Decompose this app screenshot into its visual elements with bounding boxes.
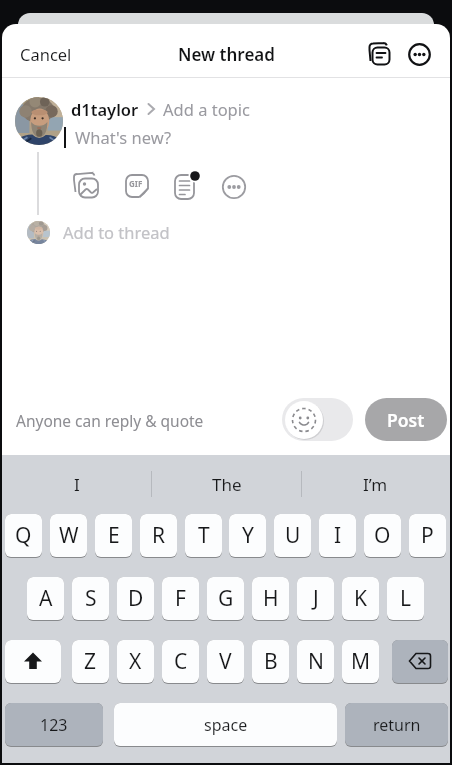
button[interactable]: [360, 36, 398, 72]
button[interactable]: Q: [5, 514, 42, 557]
staticText: Add a topic: [163, 98, 250, 120]
button[interactable]: M: [342, 640, 379, 683]
button[interactable]: L: [387, 577, 424, 620]
staticText: R: [152, 521, 166, 550]
button[interactable]: O: [364, 514, 401, 557]
staticText: W: [59, 521, 79, 550]
button[interactable]: GIF: [121, 170, 153, 202]
button[interactable]: C: [162, 640, 199, 683]
button[interactable]: G: [207, 577, 244, 620]
staticText: L: [400, 584, 412, 613]
staticText: Add to thread: [63, 221, 170, 243]
staticText: U: [285, 521, 301, 550]
button[interactable]: [71, 170, 103, 202]
button[interactable]: R: [140, 514, 177, 557]
button[interactable]: space: [114, 703, 337, 746]
staticText: D: [128, 584, 144, 613]
button[interactable]: 123: [5, 703, 103, 746]
staticText: G: [218, 584, 234, 613]
button[interactable]: Add a topic: [163, 98, 250, 120]
button[interactable]: W: [50, 514, 87, 557]
staticText: The: [212, 473, 242, 496]
button[interactable]: [400, 36, 438, 72]
button[interactable]: H: [252, 577, 289, 620]
button[interactable]: Z: [72, 640, 109, 683]
button[interactable]: D: [117, 577, 154, 620]
staticText: d1taylor: [71, 98, 139, 120]
button[interactable]: F: [162, 577, 199, 620]
staticText: return: [373, 714, 421, 736]
staticText: T: [198, 521, 210, 550]
button[interactable]: A: [27, 577, 64, 620]
staticText: New thread: [178, 43, 275, 66]
button[interactable]: return: [345, 703, 448, 746]
button[interactable]: E: [95, 514, 132, 557]
staticText: Cancel: [20, 43, 72, 65]
staticText: I: [334, 521, 342, 550]
staticText: O: [374, 521, 391, 550]
button[interactable]: [282, 398, 353, 441]
staticText: Post: [387, 408, 425, 432]
button[interactable]: T: [185, 514, 222, 557]
staticText: Y: [242, 521, 254, 550]
staticText: X: [129, 647, 142, 676]
staticText: H: [263, 584, 279, 613]
button[interactable]: I’m: [301, 469, 450, 499]
staticText: GIF: [129, 178, 143, 189]
staticText: B: [264, 647, 278, 676]
button[interactable]: S: [72, 577, 109, 620]
staticText: V: [219, 647, 232, 676]
button[interactable]: Post: [365, 398, 447, 441]
staticText: space: [204, 714, 248, 736]
button[interactable]: V: [207, 640, 244, 683]
button[interactable]: I: [319, 514, 356, 557]
staticText: 123: [40, 714, 68, 736]
staticText: N: [308, 647, 324, 676]
staticText: M: [351, 647, 371, 676]
staticText: Q: [15, 521, 32, 550]
button[interactable]: B: [252, 640, 289, 683]
button[interactable]: [218, 171, 250, 203]
staticText: A: [39, 584, 53, 613]
staticText: F: [175, 584, 186, 613]
button[interactable]: Add to thread: [63, 220, 243, 244]
staticText: P: [421, 521, 434, 550]
staticText: Anyone can reply & quote: [16, 410, 204, 431]
button[interactable]: I: [2, 469, 152, 499]
staticText: I’m: [363, 473, 388, 496]
staticText: What's new?: [75, 126, 172, 148]
button[interactable]: P: [409, 514, 446, 557]
staticText: Z: [84, 647, 97, 676]
button[interactable]: Y: [229, 514, 266, 557]
button[interactable]: [168, 167, 204, 203]
staticText: S: [85, 584, 97, 613]
button[interactable]: K: [342, 577, 379, 620]
button[interactable]: N: [297, 640, 334, 683]
button[interactable]: The: [152, 469, 301, 499]
staticText: C: [174, 647, 188, 676]
button[interactable]: Cancel: [12, 37, 82, 71]
button[interactable]: [5, 640, 61, 683]
staticText: E: [108, 521, 120, 550]
button[interactable]: J: [297, 577, 334, 620]
staticText: K: [354, 584, 367, 613]
button[interactable]: U: [274, 514, 311, 557]
button[interactable]: X: [117, 640, 154, 683]
staticText: I: [74, 473, 80, 496]
staticText: J: [313, 584, 319, 613]
button[interactable]: [392, 640, 448, 683]
